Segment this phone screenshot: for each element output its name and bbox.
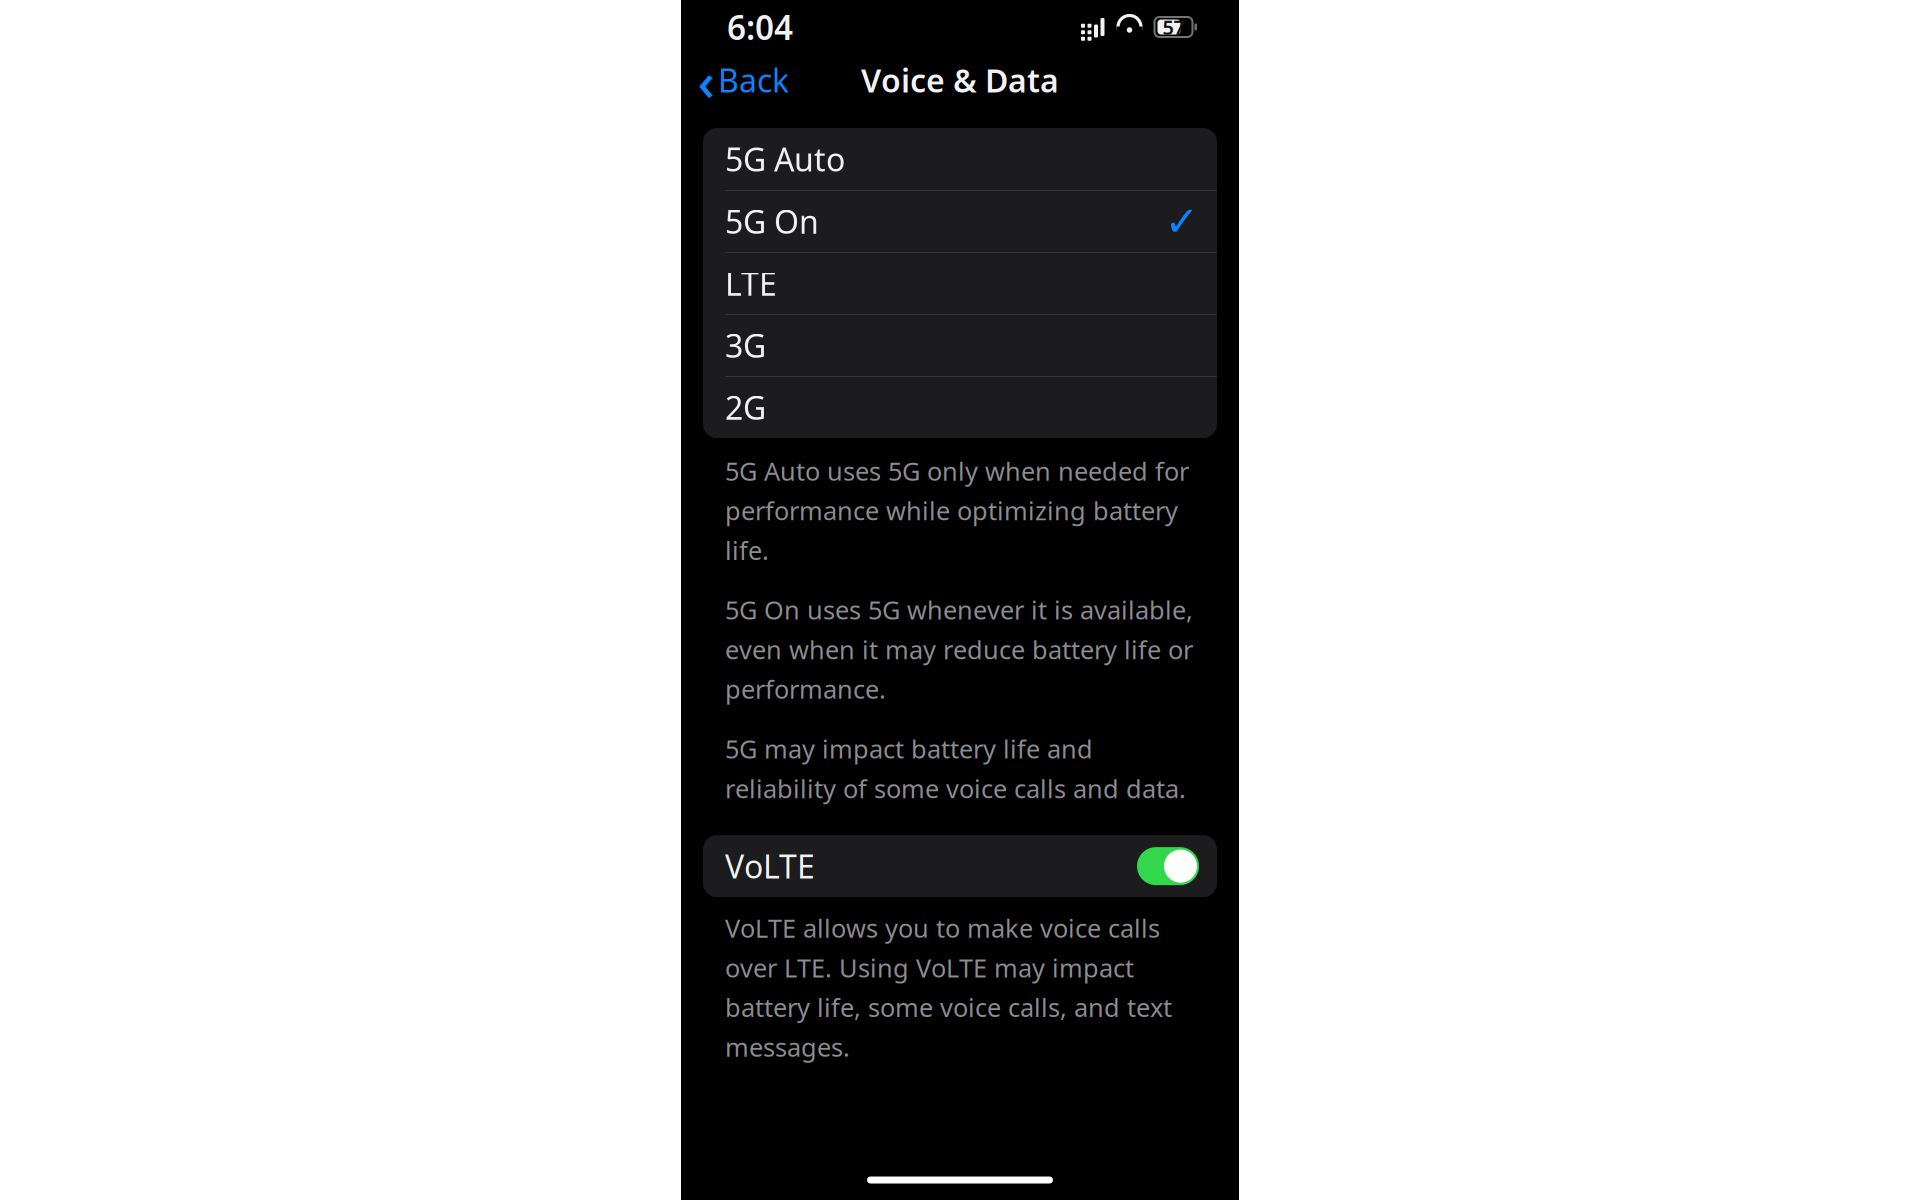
- staticText: VoLTE: [725, 845, 815, 887]
- staticText: Back: [718, 59, 789, 101]
- staticText: LTE: [725, 262, 777, 305]
- staticText: Voice & Data: [861, 59, 1059, 101]
- staticText: ✓: [1164, 198, 1199, 245]
- staticText: 5G On uses 5G whenever it is available, …: [725, 593, 1193, 706]
- button[interactable]: 5G On: [703, 190, 1217, 252]
- staticText: 5G Auto: [725, 138, 845, 180]
- staticText: ‹: [697, 45, 714, 115]
- button[interactable]: 3G: [703, 314, 1217, 376]
- staticText: 5G may impact battery life and reliabili…: [725, 732, 1186, 805]
- staticText: 5G On: [725, 200, 819, 243]
- button[interactable]: 5G Auto: [703, 128, 1217, 190]
- staticText: 2G: [725, 386, 766, 429]
- staticText: VoLTE allows you to make voice calls ove…: [725, 911, 1172, 1064]
- staticText: 3G: [725, 324, 766, 367]
- button[interactable]: 2G: [703, 376, 1217, 438]
- staticText: 5G Auto uses 5G only when needed for per…: [725, 454, 1189, 567]
- button[interactable]: LTE: [703, 252, 1217, 314]
- button[interactable]: ‹: [681, 54, 799, 106]
- staticText: 6:04: [727, 5, 793, 49]
- staticText: 57: [1162, 14, 1184, 40]
- button[interactable]: VoLTE: [703, 835, 1217, 897]
